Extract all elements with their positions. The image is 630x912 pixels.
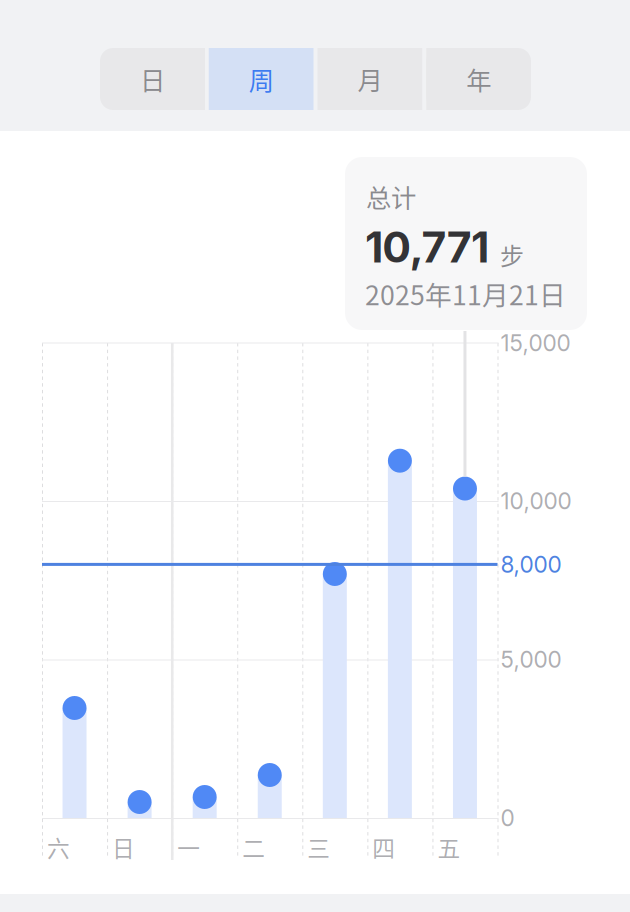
staticText: 10,771	[365, 221, 489, 273]
staticText: 五	[437, 831, 460, 863]
staticText: 六	[47, 831, 70, 863]
button[interactable]: 三 8076 步	[0, 0, 630, 912]
staticText: 2025年11月21日	[365, 274, 566, 313]
staticText: 年	[466, 61, 491, 97]
staticText: 15,000	[500, 329, 570, 357]
button[interactable]: 月	[317, 48, 422, 110]
button[interactable]: 五 10771 步	[0, 0, 630, 912]
staticText: 总计	[366, 178, 416, 215]
staticText: 四	[372, 831, 395, 863]
staticText: 日	[112, 831, 135, 863]
staticText: 0	[500, 804, 514, 832]
staticText: 步	[500, 237, 524, 272]
staticText: 8,000	[500, 551, 561, 578]
button[interactable]: 六 3849 步	[0, 0, 630, 912]
button[interactable]: 周	[209, 48, 314, 110]
staticText: 日	[140, 61, 165, 97]
staticText: 三	[307, 831, 330, 863]
button[interactable]: 年	[426, 48, 531, 110]
button[interactable]: 日 883 步	[0, 0, 630, 912]
staticText: 10,000	[500, 487, 571, 515]
button[interactable]: 一 1041 步	[0, 0, 630, 912]
staticText: 周	[249, 61, 274, 97]
button[interactable]: 四 11650 步	[0, 0, 630, 912]
button[interactable]: 二 1735 步	[0, 0, 630, 912]
button[interactable]: 日	[100, 48, 205, 110]
staticText: 一	[177, 831, 200, 863]
staticText: 5,000	[500, 646, 561, 673]
staticText: 月	[357, 61, 382, 97]
staticText: 二	[242, 831, 265, 863]
